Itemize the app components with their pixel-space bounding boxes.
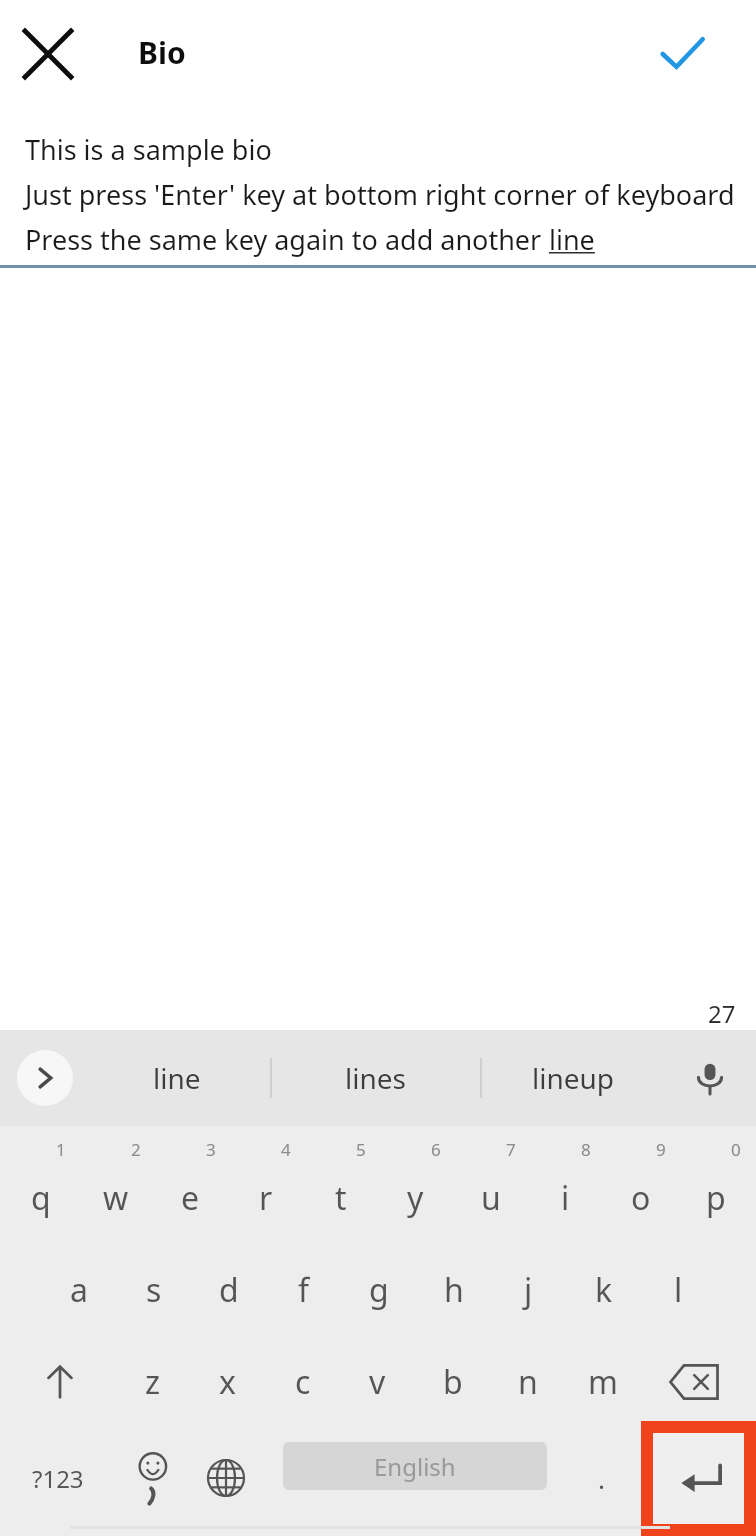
button[interactable]: b (415, 1334, 490, 1430)
button[interactable]: lines (280, 1030, 470, 1126)
button[interactable]: o (603, 1150, 678, 1246)
staticText: Just press 'Enter' key at bottom right c… (25, 176, 735, 213)
button[interactable]: h (416, 1242, 491, 1338)
staticText: b (443, 1360, 463, 1404)
staticText: q (31, 1176, 51, 1220)
button[interactable]: s (116, 1242, 191, 1338)
staticText: u (481, 1176, 501, 1220)
staticText: 8 (581, 1138, 591, 1161)
button[interactable]: u (453, 1150, 528, 1246)
staticText: y (407, 1176, 424, 1220)
staticText: 1 (56, 1138, 66, 1161)
button[interactable]: Emoji and comma (118, 1430, 186, 1526)
staticText: line (153, 1059, 201, 1097)
button[interactable]: i (528, 1150, 603, 1246)
staticText: English (374, 1450, 456, 1483)
button[interactable]: n (490, 1334, 565, 1430)
button[interactable]: x (190, 1334, 265, 1430)
staticText: n (518, 1360, 538, 1404)
staticText: line (549, 221, 595, 258)
staticText: 9 (656, 1138, 666, 1161)
staticText: Press the same key again to add another (25, 221, 549, 258)
button[interactable]: Close (14, 20, 82, 88)
button[interactable]: p (678, 1150, 753, 1246)
button[interactable]: k (566, 1242, 641, 1338)
button[interactable]: y (378, 1150, 453, 1246)
staticText: w (103, 1176, 129, 1220)
staticText: a (70, 1268, 88, 1312)
staticText: z (145, 1360, 161, 1404)
staticText: g (369, 1268, 389, 1312)
button[interactable]: j (491, 1242, 566, 1338)
staticText: 4 (281, 1138, 291, 1161)
button[interactable]: a (41, 1242, 116, 1338)
staticText: i (561, 1176, 570, 1220)
button[interactable]: e (153, 1150, 228, 1246)
button[interactable]: Voice input (682, 1050, 738, 1106)
staticText: r (259, 1176, 273, 1220)
staticText: 6 (431, 1138, 441, 1161)
staticText: 0 (731, 1138, 741, 1161)
button[interactable]: f (266, 1242, 341, 1338)
button[interactable]: r (228, 1150, 303, 1246)
staticText: h (444, 1268, 464, 1312)
button[interactable]: v (340, 1334, 415, 1430)
staticText: 7 (506, 1138, 516, 1161)
button[interactable]: m (565, 1334, 640, 1430)
staticText: lineup (532, 1059, 615, 1097)
button[interactable]: d (191, 1242, 266, 1338)
staticText: This is a sample bio (25, 131, 272, 168)
button[interactable]: Shift (20, 1334, 100, 1430)
staticText: 3 (206, 1138, 216, 1161)
button[interactable]: Change language (192, 1430, 260, 1526)
button[interactable]: English (283, 1442, 547, 1490)
staticText: e (181, 1176, 200, 1220)
staticText: x (219, 1360, 236, 1404)
button[interactable]: ?123 (16, 1430, 100, 1526)
button[interactable]: t (303, 1150, 378, 1246)
staticText: p (706, 1176, 726, 1220)
button[interactable]: c (265, 1334, 340, 1430)
button[interactable]: Expand suggestions (17, 1050, 73, 1106)
button[interactable]: z (115, 1334, 190, 1430)
button[interactable]: w (78, 1150, 153, 1246)
staticText: s (146, 1268, 162, 1312)
button[interactable]: . (570, 1430, 632, 1526)
button[interactable]: line (82, 1030, 272, 1126)
staticText: c (295, 1360, 311, 1404)
button[interactable]: Enter (653, 1433, 744, 1524)
staticText: l (674, 1268, 683, 1312)
button[interactable]: Backspace (654, 1334, 734, 1430)
staticText: . (598, 1461, 605, 1496)
staticText: 5 (356, 1138, 366, 1161)
staticText: k (595, 1268, 613, 1312)
staticText: 2 (131, 1138, 141, 1161)
staticText: lines (345, 1059, 406, 1097)
button[interactable]: g (341, 1242, 416, 1338)
staticText: o (631, 1176, 651, 1220)
staticText: d (219, 1268, 239, 1312)
staticText: m (588, 1360, 618, 1404)
staticText: ?123 (32, 1462, 84, 1495)
staticText: Bio (138, 32, 186, 73)
button[interactable]: lineup (478, 1030, 668, 1126)
button[interactable]: q (3, 1150, 78, 1246)
staticText: v (369, 1360, 386, 1404)
button[interactable]: l (641, 1242, 716, 1338)
staticText: t (335, 1176, 347, 1220)
button[interactable]: Done (648, 20, 716, 88)
staticText: j (524, 1268, 533, 1312)
staticText: f (298, 1268, 310, 1312)
staticText: 27 (708, 997, 736, 1030)
